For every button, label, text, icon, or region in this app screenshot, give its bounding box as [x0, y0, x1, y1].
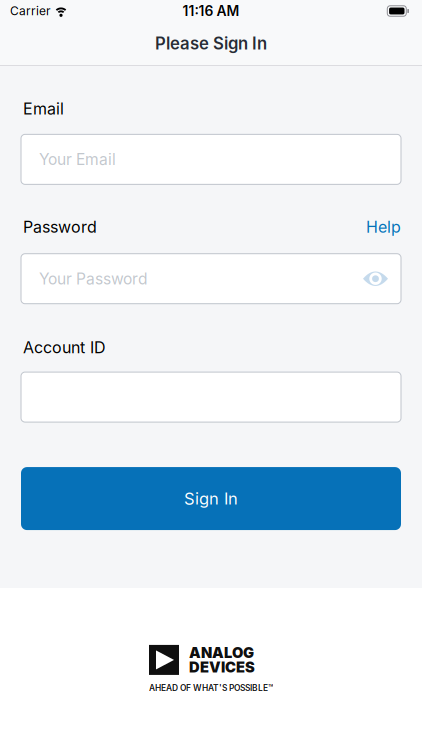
staticText: Your Password	[39, 269, 148, 288]
staticText: Help	[366, 217, 401, 237]
staticText: Sign In	[184, 489, 238, 509]
staticText: Password	[23, 217, 97, 237]
staticText: Your Email	[39, 150, 116, 169]
staticText: Account ID	[23, 338, 106, 357]
staticText: ANALOG	[189, 645, 254, 660]
button[interactable]: Help	[366, 217, 401, 237]
staticText: Carrier	[10, 4, 51, 18]
staticText: AHEAD OF WHAT'S POSSIBLE™	[149, 683, 273, 693]
staticText: Please Sign In	[155, 33, 267, 54]
button[interactable]: Show Password	[363, 271, 388, 286]
staticText: 11:16 AM	[182, 3, 239, 19]
staticText: Email	[23, 99, 64, 118]
staticText: DEVICES	[189, 660, 255, 674]
button[interactable]: Sign In	[21, 467, 401, 530]
